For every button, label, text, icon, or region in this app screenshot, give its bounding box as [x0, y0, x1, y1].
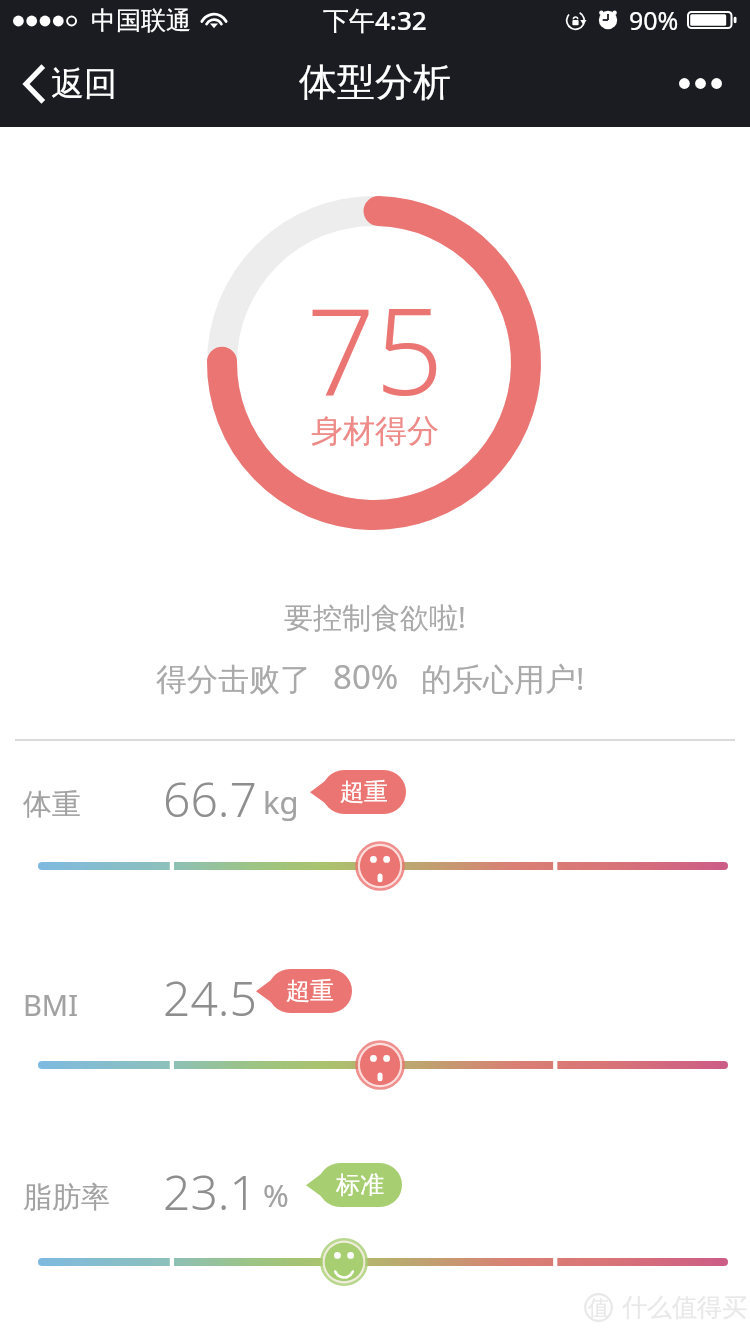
- staticText: 90%: [629, 3, 679, 37]
- staticText: 得分击败了: [156, 660, 311, 699]
- staticText: 脂肪率: [23, 1179, 110, 1216]
- staticText: 什么值得买: [622, 1292, 747, 1323]
- staticText: 标准: [336, 1170, 384, 1200]
- button[interactable]: 体重: [0, 770, 750, 900]
- staticText: %: [263, 1174, 289, 1216]
- staticText: 66.7: [163, 766, 257, 831]
- staticText: 23.1: [163, 1159, 257, 1224]
- staticText: 80%: [333, 654, 399, 699]
- button[interactable]: Back: [0, 40, 141, 127]
- button[interactable]: More options: [651, 40, 750, 127]
- staticText: 超重: [286, 976, 334, 1006]
- staticText: 返回: [51, 63, 117, 105]
- staticText: 要控制食欲啦!: [0, 597, 750, 637]
- staticText: 值: [588, 1295, 609, 1321]
- button[interactable]: BMI: [0, 969, 750, 1099]
- staticText: 下午4:32: [323, 2, 427, 38]
- staticText: kg: [263, 781, 299, 823]
- button[interactable]: 脂肪率: [0, 1163, 750, 1296]
- staticText: 体型分析: [299, 58, 451, 106]
- staticText: 24.5: [163, 965, 257, 1030]
- staticText: 身材得分: [0, 411, 750, 451]
- staticText: 的乐心用户!: [421, 657, 585, 699]
- staticText: 中国联通: [91, 5, 191, 36]
- staticText: BMI: [23, 985, 78, 1024]
- staticText: 体重: [23, 786, 81, 823]
- staticText: 超重: [340, 777, 388, 807]
- staticText: 75: [0, 267, 750, 430]
